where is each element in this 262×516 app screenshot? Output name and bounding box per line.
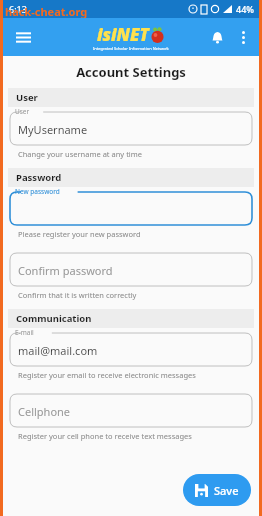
button[interactable]: User — [10, 107, 252, 145]
staticText: isiNET — [97, 23, 149, 46]
staticText: Confirm that it is written correctly — [18, 290, 137, 300]
staticText: mail@mail.com — [18, 343, 98, 358]
staticText: hack-cheat.org — [5, 4, 88, 19]
staticText: 6:13 — [9, 3, 27, 15]
staticText: Confirm password — [18, 263, 113, 278]
staticText: Integrated Scholar Information Network — [93, 46, 169, 51]
button[interactable]: Save — [183, 474, 251, 506]
staticText: Please register your new password — [18, 229, 141, 239]
button[interactable]: Notifications — [203, 23, 231, 51]
staticText: User — [16, 91, 38, 104]
staticText: Communication — [16, 312, 92, 325]
staticText: Register your cell phone to receive text… — [18, 431, 192, 441]
staticText: Save — [214, 483, 239, 498]
staticText: User — [15, 107, 30, 116]
staticText: MyUsername — [18, 122, 88, 137]
staticText: Register your email to receive electroni… — [18, 370, 196, 380]
staticText: Password — [16, 171, 62, 184]
staticText: Change your username at any time — [18, 149, 143, 159]
staticText: E-mail — [15, 328, 34, 337]
staticText: 44% — [236, 3, 254, 15]
button[interactable]: E-mail — [10, 328, 252, 366]
button[interactable]: Menu — [9, 23, 37, 51]
button[interactable]: Cellphone — [10, 389, 252, 427]
button[interactable]: New password — [10, 187, 252, 225]
staticText: Cellphone — [18, 404, 71, 419]
staticText: Account Settings — [76, 63, 186, 81]
button[interactable]: Confirm password — [10, 248, 252, 286]
staticText: New password — [15, 187, 60, 196]
button[interactable]: More options — [231, 25, 255, 49]
